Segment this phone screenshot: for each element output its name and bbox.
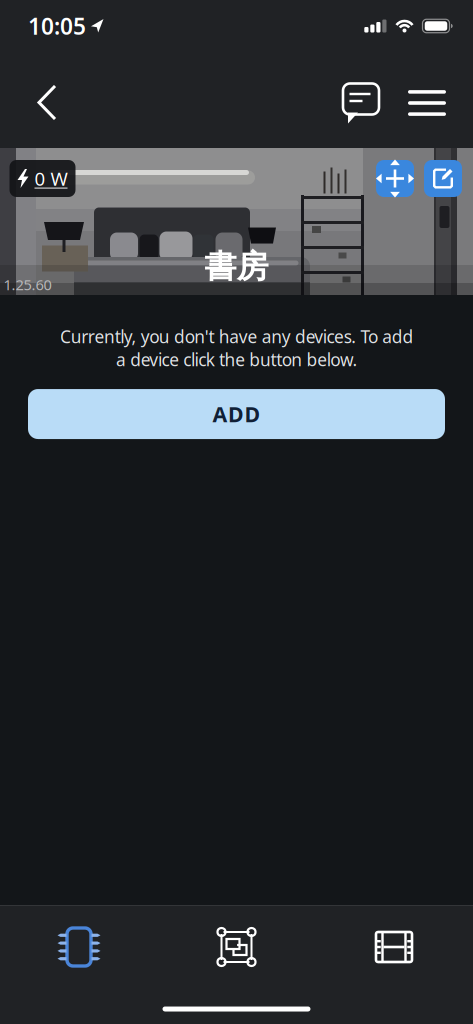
staticText: 0 W — [34, 166, 67, 191]
button[interactable]: Move — [376, 160, 414, 197]
button[interactable]: Power usage 0 W — [9, 160, 75, 197]
button[interactable]: Scenes — [158, 906, 315, 988]
button[interactable]: Menu — [398, 52, 473, 148]
button[interactable]: Add device — [28, 389, 445, 439]
staticText: 書房 — [204, 247, 268, 286]
staticText: ADD — [212, 400, 260, 428]
button[interactable]: Devices — [0, 906, 158, 988]
button[interactable]: Messages — [341, 52, 390, 148]
staticText: 1.25.60 — [3, 275, 51, 294]
button[interactable]: Media — [315, 906, 473, 988]
button[interactable]: Back — [0, 52, 76, 148]
button[interactable]: Edit — [424, 160, 462, 197]
staticText: 10:05 — [28, 11, 86, 41]
staticText: Currently, you don't have any devices. T… — [60, 325, 413, 371]
